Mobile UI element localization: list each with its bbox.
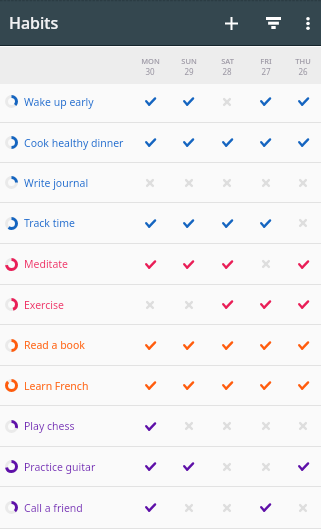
button[interactable] (131, 203, 169, 243)
button[interactable] (169, 123, 208, 162)
button[interactable] (285, 406, 321, 446)
staticText: SAT (221, 56, 234, 66)
button[interactable] (131, 244, 169, 284)
button[interactable] (169, 406, 208, 446)
button[interactable] (131, 285, 169, 324)
staticText: Play chess (24, 419, 75, 433)
button[interactable] (208, 285, 246, 324)
button[interactable] (169, 325, 208, 365)
staticText: Habits (9, 12, 59, 34)
staticText: 27 (261, 66, 271, 77)
staticText: 26 (298, 66, 308, 77)
button[interactable] (131, 447, 169, 486)
button[interactable]: Filter (252, 0, 294, 46)
button[interactable]: Exercise (0, 285, 321, 324)
button[interactable] (169, 487, 208, 528)
button[interactable]: Write journal (0, 163, 321, 202)
button[interactable] (246, 366, 285, 405)
button[interactable]: Add habit (210, 0, 252, 46)
button[interactable] (246, 406, 285, 446)
button[interactable]: Wake up early (0, 81, 321, 122)
button[interactable] (285, 447, 321, 486)
button[interactable] (208, 163, 246, 202)
button[interactable] (169, 203, 208, 243)
staticText: MON (141, 56, 160, 66)
staticText: THU (295, 56, 311, 66)
button[interactable] (246, 81, 285, 122)
button[interactable] (246, 203, 285, 243)
button[interactable] (208, 81, 246, 122)
button[interactable] (169, 81, 208, 122)
button[interactable] (208, 366, 246, 405)
staticText: Call a friend (24, 501, 83, 515)
staticText: Write journal (24, 176, 89, 190)
button[interactable] (169, 447, 208, 486)
button[interactable] (208, 487, 246, 528)
button[interactable] (246, 244, 285, 284)
button[interactable] (131, 325, 169, 365)
staticText: FRI (260, 56, 272, 66)
staticText: Exercise (24, 298, 64, 312)
staticText: Read a book (24, 338, 85, 352)
button[interactable] (285, 325, 321, 365)
button[interactable] (208, 406, 246, 446)
button[interactable] (246, 123, 285, 162)
button[interactable]: Learn French (0, 366, 321, 405)
staticText: SUN (181, 56, 197, 66)
button[interactable] (208, 123, 246, 162)
button[interactable] (169, 366, 208, 405)
button[interactable] (169, 163, 208, 202)
button[interactable]: Practice guitar (0, 447, 321, 486)
button[interactable] (285, 487, 321, 528)
button[interactable]: More options (294, 0, 321, 46)
button[interactable] (285, 81, 321, 122)
button[interactable] (246, 285, 285, 324)
button[interactable] (208, 325, 246, 365)
button[interactable] (285, 203, 321, 243)
button[interactable] (169, 285, 208, 324)
button[interactable] (169, 244, 208, 284)
button[interactable] (285, 366, 321, 405)
button[interactable] (285, 123, 321, 162)
button[interactable] (246, 325, 285, 365)
button[interactable]: Read a book (0, 325, 321, 365)
button[interactable] (131, 406, 169, 446)
button[interactable] (131, 366, 169, 405)
button[interactable] (208, 244, 246, 284)
button[interactable] (246, 447, 285, 486)
staticText: Track time (24, 216, 75, 230)
button[interactable]: Play chess (0, 406, 321, 446)
button[interactable] (246, 163, 285, 202)
button[interactable]: Call a friend (0, 487, 321, 528)
staticText: 29 (184, 66, 194, 77)
button[interactable] (285, 285, 321, 324)
staticText: 28 (222, 66, 232, 77)
button[interactable] (285, 163, 321, 202)
button[interactable] (131, 81, 169, 122)
button[interactable] (285, 244, 321, 284)
staticText: Meditate (24, 257, 69, 271)
staticText: Practice guitar (24, 460, 96, 474)
button[interactable] (208, 447, 246, 486)
button[interactable]: Meditate (0, 244, 321, 284)
staticText: Cook healthy dinner (24, 136, 124, 150)
button[interactable] (131, 487, 169, 528)
button[interactable] (246, 487, 285, 528)
button[interactable] (208, 203, 246, 243)
staticText: Wake up early (24, 95, 94, 109)
staticText: Learn French (24, 379, 89, 393)
button[interactable]: Track time (0, 203, 321, 243)
staticText: 30 (145, 66, 155, 77)
button[interactable]: Cook healthy dinner (0, 123, 321, 162)
button[interactable] (131, 123, 169, 162)
button[interactable] (131, 163, 169, 202)
